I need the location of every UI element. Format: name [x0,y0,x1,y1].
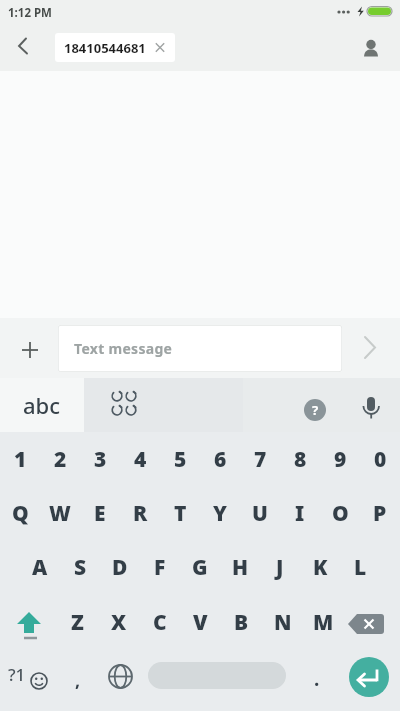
button[interactable]: U [240,486,280,540]
staticText: N [274,608,292,637]
button[interactable] [344,614,392,650]
staticText: S [74,553,87,582]
staticText: V [193,608,208,637]
button[interactable]: V [180,594,221,650]
button[interactable]: S [60,540,100,594]
button[interactable]: 1 [0,432,40,486]
button[interactable]: 0 [360,432,400,486]
staticText: U [252,499,268,528]
button[interactable]: Text message [58,325,342,372]
staticText: 7 [254,445,267,474]
button[interactable]: Z [57,594,98,650]
button[interactable]: 6 [200,432,240,486]
button[interactable] [106,662,135,691]
button[interactable]: P [360,486,400,540]
button[interactable] [355,30,387,62]
staticText: 1:12 PM [8,5,52,21]
staticText: H [232,553,249,582]
staticText: C [153,608,167,637]
button[interactable] [354,388,388,422]
button[interactable]: L [340,540,380,594]
staticText: , [75,668,81,693]
staticText: ?1 [8,663,26,686]
staticText: O [332,499,349,528]
button[interactable]: 9 [320,432,360,486]
button[interactable]: G [180,540,220,594]
staticText: Text message [74,339,173,358]
staticText: Q [12,499,29,528]
button[interactable]: 5 [160,432,200,486]
staticText: K [313,553,328,582]
button[interactable]: K [300,540,340,594]
staticText: L [354,553,367,582]
staticText: J [276,553,284,582]
button[interactable]: ?1 [6,660,50,692]
staticText: 9 [334,445,347,474]
staticText: 0 [374,445,387,474]
button[interactable]: 18410544681 [55,33,175,62]
staticText: I [295,499,305,528]
button[interactable] [8,34,40,66]
button[interactable]: H [220,540,260,594]
staticText: F [154,553,166,582]
staticText: M [313,608,334,637]
button[interactable]: abc [0,378,84,432]
button[interactable] [14,334,46,366]
button[interactable]: I [280,486,320,540]
staticText: ? [312,401,319,419]
button[interactable] [84,378,243,432]
button[interactable]: 2 [40,432,80,486]
staticText: G [192,553,208,582]
staticText: 8 [294,445,307,474]
button[interactable]: J [260,540,300,594]
staticText: . [314,666,320,692]
button[interactable]: 3 [80,432,120,486]
staticText: E [94,499,106,528]
button[interactable]: W [40,486,80,540]
staticText: P [373,499,387,528]
button[interactable] [354,332,384,362]
staticText: B [234,608,249,637]
staticText: 18410544681 [64,39,146,57]
staticText: Z [71,608,84,637]
staticText: 6 [214,445,227,474]
staticText: 4 [134,445,147,474]
button[interactable]: 4 [120,432,160,486]
staticText: 5 [174,445,187,474]
button[interactable]: N [262,594,303,650]
staticText: X [111,608,127,637]
button[interactable]: F [140,540,180,594]
button[interactable]: B [221,594,262,650]
staticText: 1 [14,445,27,474]
button[interactable] [148,662,286,689]
staticText: R [133,499,148,528]
staticText: 2 [54,445,67,474]
button[interactable]: T [160,486,200,540]
button[interactable]: Q [0,486,40,540]
button[interactable]: R [120,486,160,540]
button[interactable]: 8 [280,432,320,486]
button[interactable]: A [20,540,60,594]
staticText: 3 [94,445,107,474]
staticText: abc [23,390,61,420]
button[interactable]: ? [304,399,326,421]
staticText: A [32,553,48,582]
staticText: T [174,499,187,528]
button[interactable]: C [139,594,180,650]
button[interactable]: E [80,486,120,540]
button[interactable]: X [98,594,139,650]
staticText: W [49,499,71,528]
staticText: Y [213,499,227,528]
button[interactable] [10,604,50,644]
button[interactable]: D [100,540,140,594]
button[interactable]: Y [200,486,240,540]
button[interactable]: 7 [240,432,280,486]
button[interactable] [349,657,389,697]
button[interactable]: M [303,594,344,650]
staticText: D [112,553,128,582]
button[interactable]: O [320,486,360,540]
